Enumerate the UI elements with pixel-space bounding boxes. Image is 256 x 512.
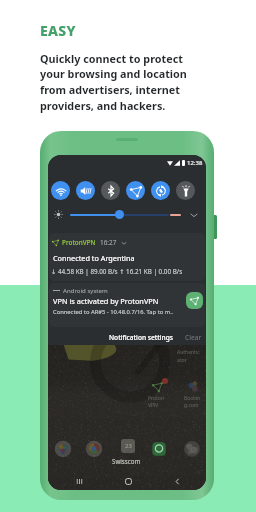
- staticText: Authentic ator: [177, 349, 200, 363]
- staticText: Connected to Argentina: [53, 253, 135, 263]
- staticText: 23: [125, 442, 132, 450]
- staticText: EASY: [40, 21, 76, 40]
- staticText: Connected to AR#5 - 10.48.0.7/16. Tap to…: [53, 308, 174, 316]
- button[interactable]: Booking: [186, 379, 201, 394]
- button[interactable]: Mute: [76, 181, 95, 200]
- staticText: 12:38: [187, 159, 203, 167]
- button[interactable]: Bluetooth: [101, 181, 120, 200]
- button[interactable]: Recents: [69, 471, 89, 490]
- button[interactable]: ProtonVPN: [49, 233, 205, 281]
- staticText: ProtonVPN: [62, 238, 96, 247]
- button[interactable]: App: [150, 440, 168, 458]
- button[interactable]: Notification settings: [109, 333, 174, 342]
- button[interactable]: Flashlight: [176, 181, 195, 200]
- button[interactable]: Auto rotate: [151, 181, 170, 200]
- staticText: Bookin g.com: [184, 395, 201, 409]
- button[interactable]: ProtonVPN quick action: [186, 292, 203, 309]
- button[interactable]: Android system: [49, 283, 205, 327]
- button[interactable]: App: [54, 440, 72, 458]
- staticText: Quickly connect to protect your browsing…: [40, 51, 187, 113]
- button[interactable]: Home: [118, 471, 138, 490]
- button[interactable]: VPN: [126, 181, 145, 200]
- button[interactable]: Back: [167, 471, 187, 490]
- staticText: Android system: [63, 286, 108, 294]
- staticText: Swisscom: [112, 457, 141, 465]
- staticText: ↓ 44.58 KB | 89.00 B/s ↑ 16.21 KB | 0.00…: [51, 267, 183, 276]
- button[interactable]: ProtonVPN: [150, 379, 165, 394]
- button[interactable]: Calendar: [121, 439, 135, 453]
- button[interactable]: Wi-Fi: [51, 181, 70, 200]
- button[interactable]: Clear: [185, 333, 202, 342]
- staticText: 16:27: [100, 238, 117, 247]
- staticText: VPN is activated by ProtonVPN: [53, 296, 159, 306]
- button[interactable]: App: [85, 440, 103, 458]
- button[interactable]: Expand quick settings: [190, 211, 198, 219]
- staticText: Proton VPN: [148, 395, 164, 409]
- button[interactable]: App: [183, 440, 201, 458]
